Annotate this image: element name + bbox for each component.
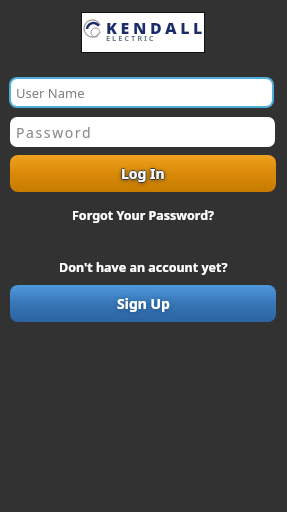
staticText: Log In [121,165,165,184]
button[interactable]: Password [10,117,275,147]
staticText: ELECTRIC [106,33,156,43]
staticText: Sign Up [117,294,170,313]
button[interactable]: Sign Up [10,285,276,322]
staticText: Log In [121,164,165,183]
staticText: Log In [122,164,166,183]
staticText: Password [16,123,93,142]
staticText: KENDALL [106,17,206,39]
staticText: User Name [16,84,85,102]
button[interactable]: User Name [9,77,274,108]
staticText: Don't have an account yet? [59,259,228,276]
staticText: Forgot Your Password? [72,207,215,224]
button[interactable]: Log In [10,155,276,192]
staticText: Log In [120,164,164,183]
staticText: Log In [121,163,165,182]
button[interactable]: Forgot Your Password? [0,206,287,224]
